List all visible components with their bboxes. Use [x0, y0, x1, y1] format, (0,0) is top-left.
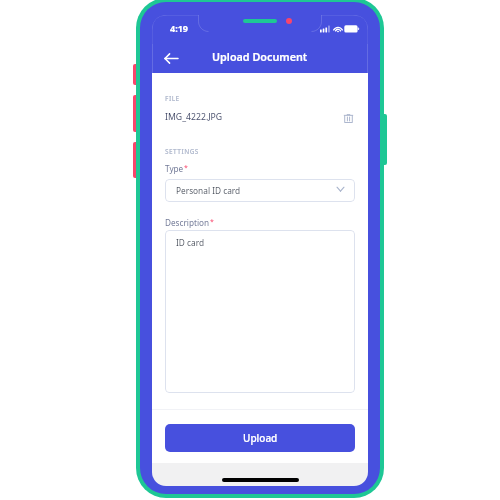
staticText: *: [184, 163, 188, 173]
staticText: IMG_4222.JPG: [165, 111, 223, 123]
button[interactable]: Delete file: [340, 110, 356, 126]
staticText: Type: [165, 163, 184, 174]
staticText: Description: [165, 217, 210, 228]
button[interactable]: Personal ID card: [165, 179, 355, 202]
button[interactable]: Back: [160, 47, 183, 70]
button[interactable]: Upload: [165, 424, 355, 452]
staticText: 4:19: [170, 22, 188, 34]
staticText: Upload Document: [212, 49, 308, 64]
staticText: SETTINGS: [165, 147, 199, 156]
staticText: Personal ID card: [176, 185, 241, 196]
staticText: Upload: [243, 431, 278, 445]
staticText: FILE: [165, 94, 180, 103]
button[interactable]: ID card: [165, 230, 355, 393]
staticText: ID card: [176, 237, 205, 248]
staticText: *: [210, 217, 214, 227]
